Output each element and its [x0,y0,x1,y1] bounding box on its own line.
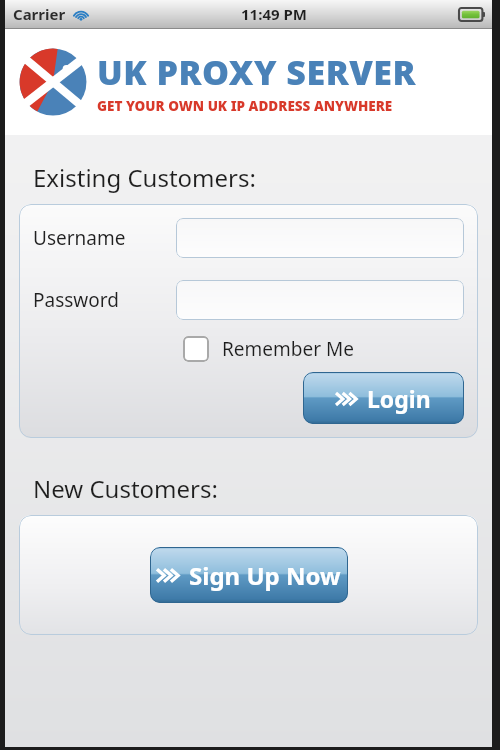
staticText: Existing Customers: [33,161,256,194]
button[interactable]: Sign Up Now [150,547,348,603]
staticText: Password [33,287,119,313]
staticText: Username [33,225,126,251]
staticText: New Customers: [33,472,218,505]
staticText: Login [367,383,431,414]
button[interactable]: Login [303,372,464,424]
button[interactable]: Password [176,280,464,320]
staticText: Remember Me [222,336,354,362]
staticText: UK PROXY SERVER [97,49,482,95]
staticText: Sign Up Now [189,559,341,592]
staticText: GET YOUR OWN UK IP ADDRESS ANYWHERE [97,97,482,115]
staticText: Carrier [13,4,66,24]
button[interactable]: Username [176,218,464,258]
staticText: 11:49 PM [241,4,307,24]
button[interactable]: Remember Me [183,336,464,362]
